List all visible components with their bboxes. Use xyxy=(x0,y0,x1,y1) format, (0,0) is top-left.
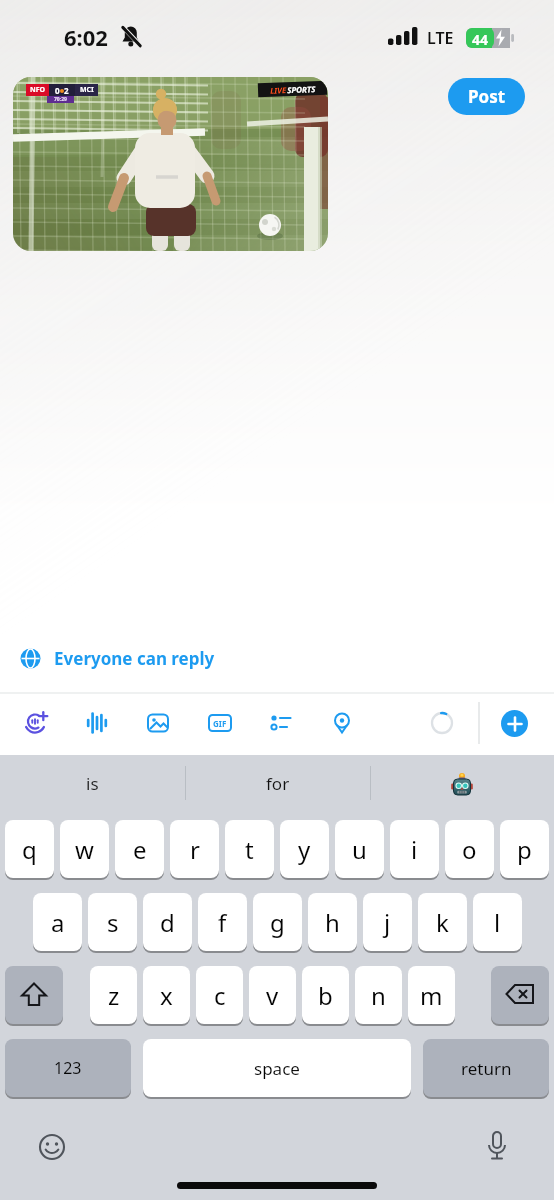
button[interactable]: t xyxy=(225,820,274,878)
staticText: m xyxy=(420,979,443,1012)
button[interactable]: z xyxy=(90,966,137,1024)
staticText: h xyxy=(325,906,340,939)
staticText: is xyxy=(86,772,99,795)
button[interactable]: Post xyxy=(448,78,525,115)
staticText: i xyxy=(411,833,418,866)
button[interactable]: k xyxy=(418,893,467,951)
staticText: 6:02 xyxy=(64,22,108,52)
button[interactable]: o xyxy=(445,820,494,878)
staticText: o xyxy=(462,833,477,866)
button[interactable]: j xyxy=(363,893,412,951)
staticText: w xyxy=(75,833,94,866)
button[interactable]: n xyxy=(355,966,402,1024)
staticText: c xyxy=(214,979,226,1012)
button[interactable] xyxy=(501,710,528,737)
staticText: MCI xyxy=(80,85,94,95)
staticText: f xyxy=(218,906,227,939)
button[interactable]: v xyxy=(249,966,296,1024)
button[interactable]: i xyxy=(390,820,439,878)
staticText: x xyxy=(160,979,173,1012)
staticText: Post xyxy=(468,85,506,108)
staticText: space xyxy=(254,1057,300,1080)
button[interactable]: q xyxy=(5,820,54,878)
staticText: u xyxy=(352,833,367,866)
staticText: a xyxy=(51,906,65,939)
staticText: v xyxy=(266,979,279,1012)
staticText: s xyxy=(107,906,119,939)
button[interactable]: u xyxy=(335,820,384,878)
button[interactable]: space xyxy=(143,1039,411,1097)
button[interactable]: NFO xyxy=(13,77,328,251)
button[interactable] xyxy=(491,966,549,1024)
button[interactable]: GIF xyxy=(208,714,232,732)
button[interactable]: e xyxy=(115,820,164,878)
staticText: for xyxy=(266,772,290,795)
staticText: t xyxy=(245,833,254,866)
button[interactable]: y xyxy=(280,820,329,878)
button[interactable]: c xyxy=(196,966,243,1024)
button[interactable]: w xyxy=(60,820,109,878)
button[interactable]: h xyxy=(308,893,357,951)
button[interactable]: Everyone can reply xyxy=(20,645,215,671)
staticText: LTE xyxy=(427,27,454,49)
staticText: b xyxy=(318,979,333,1012)
button[interactable]: d xyxy=(143,893,192,951)
staticText: 44 xyxy=(472,30,489,46)
button[interactable] xyxy=(85,711,109,735)
button[interactable] xyxy=(5,966,63,1024)
button[interactable] xyxy=(370,757,554,809)
staticText: l xyxy=(494,906,501,939)
staticText: d xyxy=(160,906,175,939)
button[interactable]: p xyxy=(500,820,549,878)
staticText: q xyxy=(22,833,37,866)
staticText: j xyxy=(384,906,391,939)
staticText: SPORTS xyxy=(287,83,316,95)
button[interactable] xyxy=(269,711,293,735)
staticText: z xyxy=(108,979,120,1012)
staticText: LIVE xyxy=(270,84,287,96)
staticText: 70:29 xyxy=(54,96,67,103)
staticText: e xyxy=(133,833,147,866)
button[interactable] xyxy=(24,711,48,735)
staticText: g xyxy=(270,906,285,939)
button[interactable]: is xyxy=(0,757,185,809)
button[interactable]: s xyxy=(88,893,137,951)
staticText: NFO xyxy=(30,85,46,95)
button[interactable]: l xyxy=(473,893,522,951)
button[interactable] xyxy=(146,711,170,735)
button[interactable]: m xyxy=(408,966,455,1024)
staticText: Everyone can reply xyxy=(54,647,215,670)
staticText: p xyxy=(517,833,532,866)
button[interactable]: for xyxy=(185,757,370,809)
staticText: n xyxy=(371,979,386,1012)
staticText: 123 xyxy=(54,1057,82,1079)
staticText: r xyxy=(190,833,200,866)
button[interactable] xyxy=(483,1131,511,1165)
button[interactable]: g xyxy=(253,893,302,951)
button[interactable]: f xyxy=(198,893,247,951)
button[interactable]: r xyxy=(170,820,219,878)
button[interactable]: a xyxy=(33,893,82,951)
staticText: GIF xyxy=(213,718,227,729)
staticText: 2 xyxy=(64,85,69,96)
button[interactable]: 123 xyxy=(5,1039,131,1097)
button[interactable] xyxy=(330,711,354,735)
button[interactable] xyxy=(38,1133,66,1161)
staticText: y xyxy=(298,833,311,866)
staticText: 0 xyxy=(55,85,60,96)
button[interactable]: x xyxy=(143,966,190,1024)
button[interactable]: return xyxy=(423,1039,549,1097)
staticText: k xyxy=(436,906,449,939)
staticText: return xyxy=(461,1057,512,1080)
button[interactable]: b xyxy=(302,966,349,1024)
